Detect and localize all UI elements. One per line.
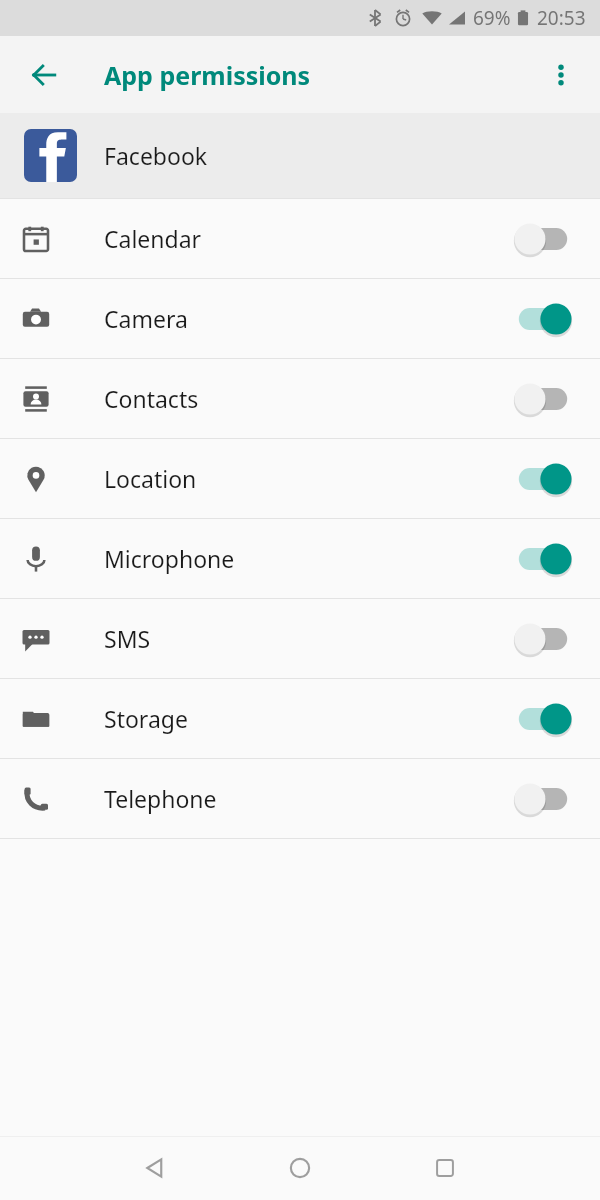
- staticText: 69%: [473, 5, 511, 31]
- button[interactable]: Calendar: [0, 199, 600, 278]
- staticText: 20:53: [537, 5, 586, 31]
- button[interactable]: Back: [127, 1140, 183, 1196]
- button[interactable]: Location: [0, 439, 600, 518]
- button[interactable]: Camera: [0, 279, 600, 358]
- button[interactable]: Telephone: [0, 759, 600, 838]
- button[interactable]: Back: [18, 49, 70, 101]
- staticText: Contacts: [104, 383, 199, 414]
- staticText: Location: [104, 463, 197, 494]
- button[interactable]: Recents: [417, 1140, 473, 1196]
- staticText: Telephone: [104, 783, 217, 814]
- button[interactable]: Home: [272, 1140, 328, 1196]
- button[interactable]: Storage: [0, 679, 600, 758]
- button[interactable]: More options: [536, 50, 586, 100]
- staticText: Calendar: [104, 223, 202, 254]
- staticText: Facebook: [104, 140, 208, 171]
- staticText: App permissions: [104, 58, 311, 92]
- button[interactable]: Microphone: [0, 519, 600, 598]
- staticText: SMS: [104, 623, 151, 654]
- staticText: Microphone: [104, 543, 235, 574]
- button[interactable]: SMS: [0, 599, 600, 678]
- button[interactable]: Contacts: [0, 359, 600, 438]
- staticText: Storage: [104, 703, 188, 734]
- button[interactable]: Facebook: [0, 113, 600, 198]
- staticText: Camera: [104, 303, 188, 334]
